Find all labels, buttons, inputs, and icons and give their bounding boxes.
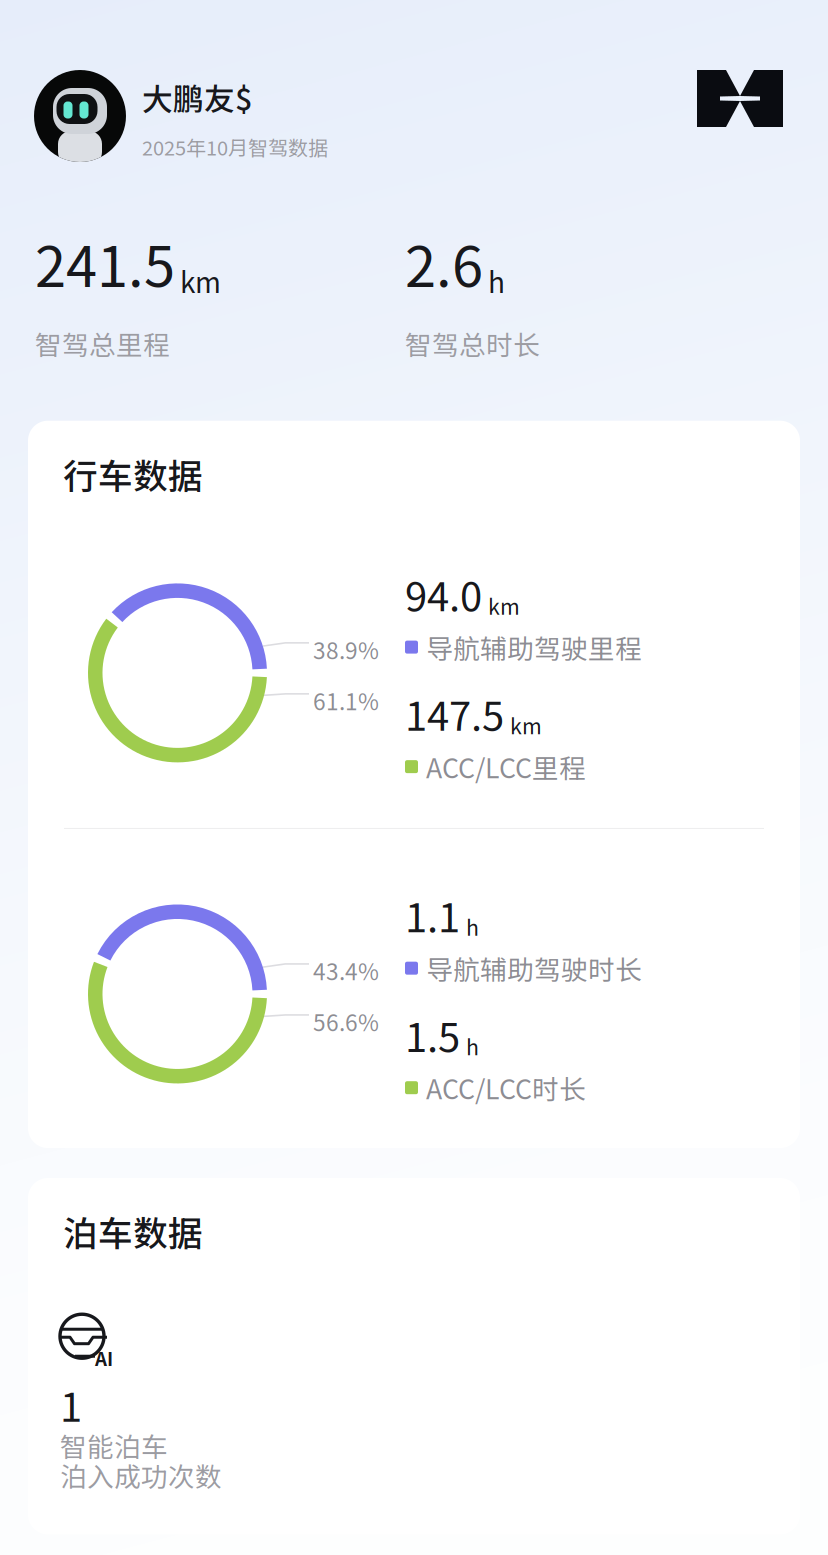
staticText: 智能泊车 bbox=[60, 1426, 168, 1465]
staticText: 38.9% bbox=[313, 633, 379, 666]
staticText: 智驾总里程 bbox=[35, 324, 170, 363]
staticText: 大鹏友$ bbox=[142, 75, 252, 119]
staticText: km bbox=[488, 590, 520, 621]
button[interactable]: XPeng bbox=[697, 70, 783, 127]
staticText: 241.5 bbox=[35, 222, 175, 303]
staticText: 行车数据 bbox=[63, 449, 203, 499]
staticText: h bbox=[466, 1030, 479, 1061]
staticText: h bbox=[488, 260, 505, 301]
staticText: h bbox=[466, 911, 479, 942]
staticText: AI bbox=[95, 1344, 113, 1371]
staticText: 94.0 bbox=[405, 565, 482, 623]
staticText: 1.5 bbox=[405, 1005, 460, 1063]
staticText: 1 bbox=[60, 1375, 82, 1433]
staticText: 56.6% bbox=[313, 1005, 379, 1038]
staticText: 1.1 bbox=[405, 886, 460, 944]
staticText: ACC/LCC时长 bbox=[426, 1068, 586, 1107]
staticText: 147.5 bbox=[405, 684, 504, 742]
staticText: 泊入成功次数 bbox=[60, 1456, 222, 1494]
staticText: 43.4% bbox=[313, 954, 379, 987]
staticText: 2025年10月智驾数据 bbox=[142, 132, 328, 161]
staticText: 61.1% bbox=[313, 684, 379, 717]
staticText: 2.6 bbox=[405, 222, 483, 303]
staticText: 导航辅助驾驶里程 bbox=[426, 628, 642, 666]
staticText: 智驾总时长 bbox=[405, 324, 540, 363]
staticText: km bbox=[510, 709, 542, 740]
staticText: 导航辅助驾驶时长 bbox=[426, 949, 642, 987]
staticText: km bbox=[180, 260, 221, 301]
staticText: 泊车数据 bbox=[63, 1206, 203, 1256]
staticText: ACC/LCC里程 bbox=[426, 747, 586, 786]
